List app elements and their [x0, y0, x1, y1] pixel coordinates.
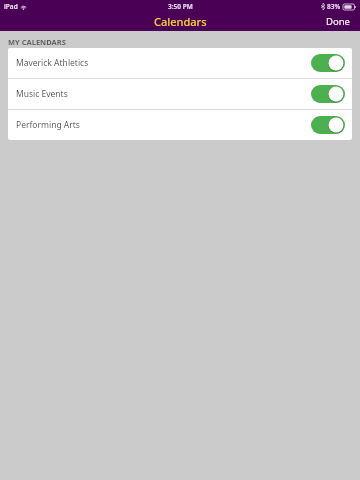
staticText: Music Events	[16, 88, 68, 100]
staticText: Done	[326, 15, 350, 28]
button[interactable]: Music Events	[8, 79, 352, 109]
button[interactable]: Toggle calendar	[311, 116, 345, 134]
button[interactable]: Maverick Athletics	[8, 48, 352, 78]
button[interactable]: Toggle calendar	[311, 85, 345, 103]
button[interactable]: Performing Arts	[8, 110, 352, 140]
button[interactable]: Done	[316, 12, 360, 31]
button[interactable]: Toggle calendar	[311, 54, 345, 72]
staticText: Maverick Athletics	[16, 57, 89, 69]
staticText: MY CALENDARS	[8, 37, 66, 47]
staticText: 3:50 PM	[168, 2, 193, 11]
staticText: iPad	[4, 2, 18, 11]
staticText: Performing Arts	[16, 119, 80, 131]
staticText: 83%	[327, 2, 341, 11]
staticText: Calendars	[154, 14, 207, 29]
